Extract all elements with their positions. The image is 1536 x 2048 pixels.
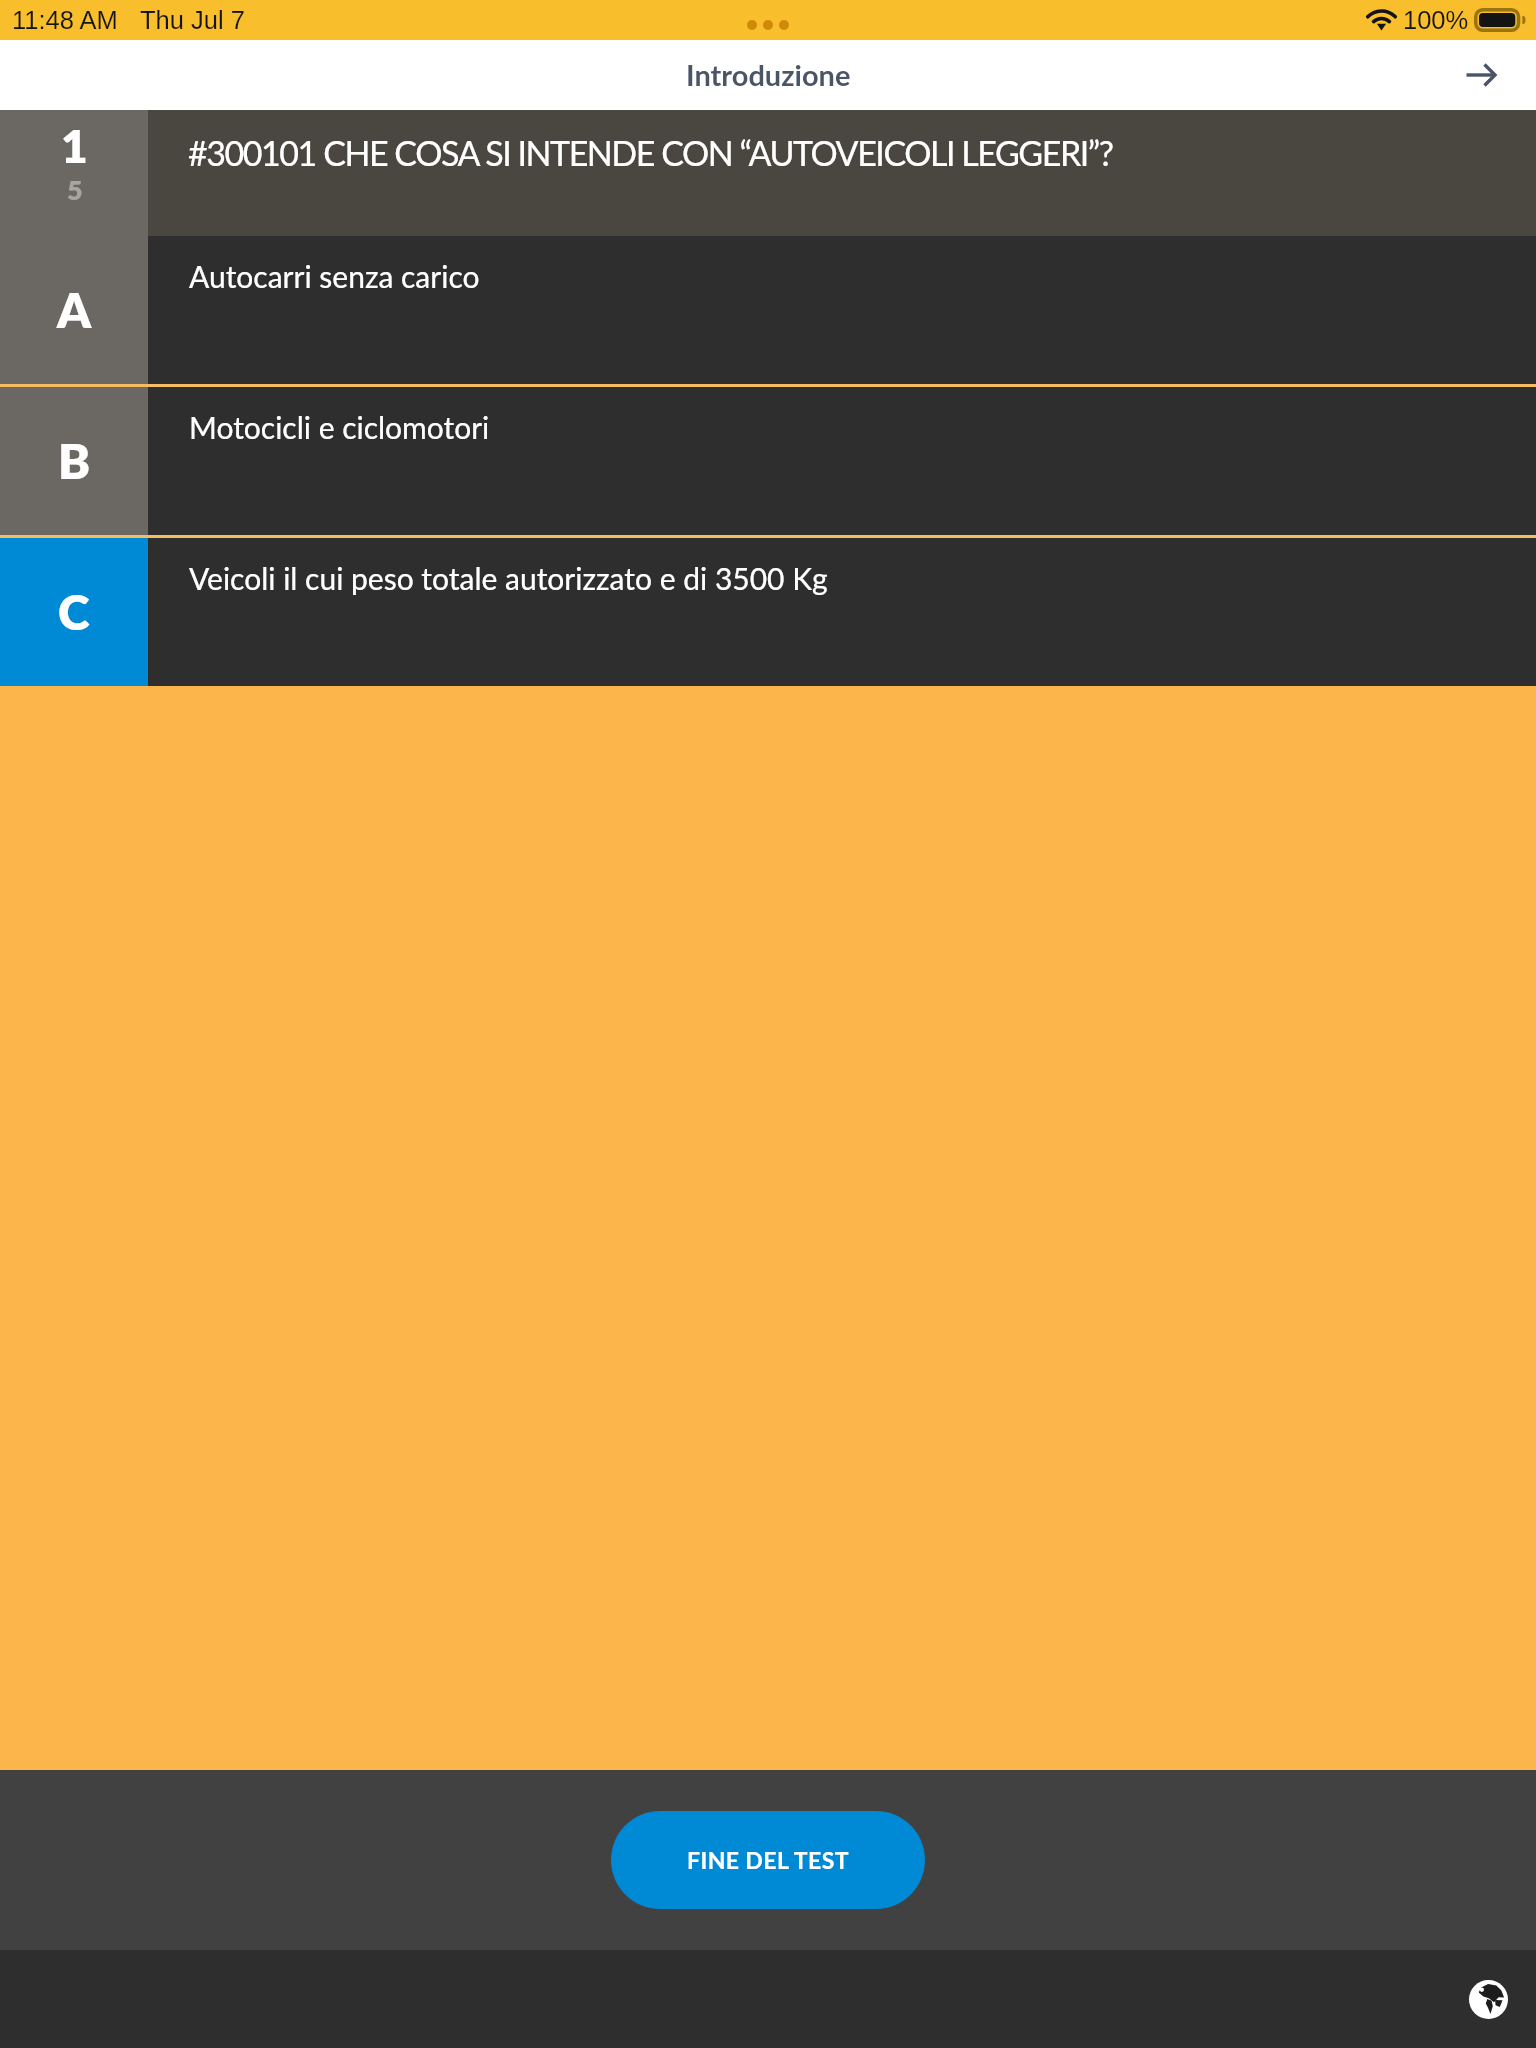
button[interactable]: A	[0, 236, 1536, 384]
button[interactable]: FINE DEL TEST	[611, 1811, 925, 1909]
staticText: B	[58, 432, 91, 490]
staticText: A	[57, 281, 92, 339]
staticText: Motocicli e ciclomotori	[189, 409, 490, 445]
button[interactable]: B	[0, 387, 1536, 535]
staticText: Veicoli il cui peso totale autorizzato e…	[189, 560, 828, 596]
staticText: 100%	[1403, 6, 1469, 34]
staticText: Autocarri senza carico	[189, 258, 480, 294]
staticText: 5	[67, 173, 83, 205]
button[interactable]: Next question	[1440, 40, 1536, 110]
staticText: #300101 CHE COSA SI INTENDE CON “AUTOVEI…	[188, 132, 1113, 173]
staticText: 11:48 AM	[12, 6, 118, 34]
button[interactable]: C	[0, 538, 1536, 686]
staticText: FINE DEL TEST	[687, 1846, 849, 1874]
staticText: Thu Jul 7	[140, 6, 245, 34]
button[interactable]: Change language	[1456, 1967, 1520, 2031]
staticText: Introduzione	[686, 57, 851, 92]
staticText: C	[58, 583, 90, 641]
staticText: 1	[61, 118, 88, 173]
